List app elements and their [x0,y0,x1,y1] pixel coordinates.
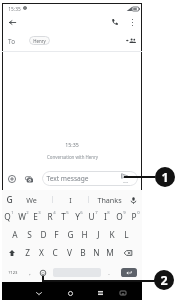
button[interactable]: Shift [3,244,21,261]
staticText: SMS [118,180,133,183]
button[interactable]: Call [107,14,123,30]
staticText: Henry [33,38,46,44]
button[interactable]: T [58,208,72,225]
staticText: G [6,194,13,206]
staticText: G [67,229,74,240]
button[interactable]: Henry [29,36,50,45]
button[interactable]: . [104,264,114,281]
button[interactable]: Thanks [91,194,127,206]
button[interactable]: V [62,244,76,261]
button[interactable]: R [44,208,58,225]
button[interactable]: More options [125,14,139,30]
staticText: I [104,211,107,222]
staticText: We [26,195,37,205]
staticText: 9 [123,210,126,216]
button[interactable]: , [24,264,36,281]
button[interactable]: Switch keyboard [116,286,130,300]
staticText: 1 [161,169,169,186]
button[interactable]: O [114,208,128,225]
button[interactable]: C [48,244,62,261]
button[interactable]: U [86,208,100,225]
button[interactable]: L [119,226,133,243]
staticText: 2 [160,272,168,289]
button[interactable]: H [77,226,91,243]
button[interactable]: Voice input [127,194,139,206]
button[interactable]: G [63,226,77,243]
button[interactable]: M [103,244,117,261]
staticText: C [52,247,58,258]
staticText: 4 [53,210,56,216]
staticText: Y [75,211,80,222]
button[interactable]: Q [2,208,16,225]
staticText: Conversation with Henry [47,154,98,160]
staticText: Z [25,247,30,258]
staticText: Q [4,211,11,222]
button[interactable]: F [49,226,63,243]
button[interactable]: Attach [5,172,19,186]
staticText: Thanks [97,195,122,205]
staticText: 5 [66,210,69,216]
button[interactable]: B [76,244,90,261]
staticText: 6 [80,210,83,216]
button[interactable]: P [128,208,142,225]
staticText: 15:35 [8,6,21,13]
staticText: N [93,247,100,258]
staticText: R [47,211,53,222]
button[interactable]: W [16,208,30,225]
staticText: A [12,229,18,240]
button[interactable]: I [100,208,114,225]
staticText: 15:35 [65,141,79,148]
button[interactable]: Camera [22,172,36,186]
button[interactable]: Back [32,286,46,300]
button[interactable]: Google [3,194,15,206]
button[interactable]: X [34,244,48,261]
button[interactable]: Y [72,208,86,225]
staticText: D [40,229,47,240]
staticText: , [29,269,31,276]
button[interactable]: Backspace [120,244,136,261]
staticText: E [33,211,38,222]
staticText: ?123 [8,270,18,276]
button[interactable]: N [89,244,103,261]
staticText: 2 [26,210,29,216]
staticText: 8 [107,210,110,216]
staticText: L [124,229,129,240]
staticText: K [109,229,115,240]
button[interactable]: A [8,226,22,243]
staticText: . [108,269,110,276]
button[interactable]: Emoji [37,264,49,281]
staticText: S [27,229,32,240]
button[interactable]: J [91,226,105,243]
button[interactable] [42,171,138,186]
button[interactable]: E [30,208,44,225]
button[interactable]: Recent apps [93,286,107,300]
staticText: T [61,211,66,222]
button[interactable]: Send SMS [118,171,133,186]
staticText: M [106,247,114,258]
button[interactable]: We [14,194,48,206]
staticText: Text message [46,174,89,183]
staticText: F [54,229,59,240]
staticText: W [18,211,26,222]
staticText: 1 [11,210,14,216]
staticText: 0 [137,210,140,216]
button[interactable]: Back [4,14,20,30]
staticText: P [131,211,137,222]
staticText: I [69,195,72,205]
button[interactable]: Home [63,286,77,300]
staticText: To [8,37,15,46]
button[interactable]: Z [20,244,34,261]
staticText: O [116,211,123,222]
button[interactable]: S [22,226,36,243]
button[interactable]: Add recipient [124,34,138,48]
staticText: J [97,229,100,240]
staticText: 3 [38,210,41,216]
button[interactable]: Enter [121,268,137,277]
staticText: 7 [95,210,98,216]
staticText: U [88,211,95,222]
button[interactable]: K [105,226,119,243]
button[interactable]: ?123 [3,264,23,281]
button[interactable]: I [55,194,85,206]
button[interactable]: D [36,226,50,243]
